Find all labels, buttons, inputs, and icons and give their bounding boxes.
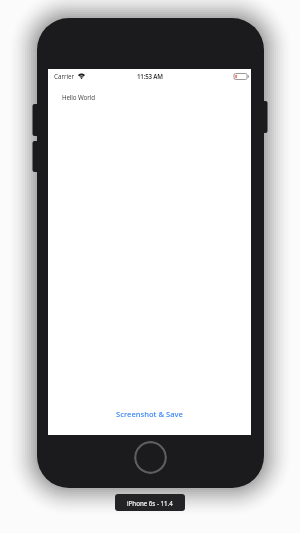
button[interactable]: iPhone 6s - 11.4 <box>115 494 185 511</box>
staticText: iPhone 6s - 11.4 <box>127 499 173 507</box>
staticText: Hello World <box>62 93 95 101</box>
button[interactable]: Screenshot & Save <box>112 405 187 423</box>
button[interactable] <box>134 441 167 474</box>
staticText: 11:53 AM <box>137 72 163 80</box>
staticText: Carrier <box>54 72 75 80</box>
staticText: Screenshot & Save <box>116 409 183 419</box>
